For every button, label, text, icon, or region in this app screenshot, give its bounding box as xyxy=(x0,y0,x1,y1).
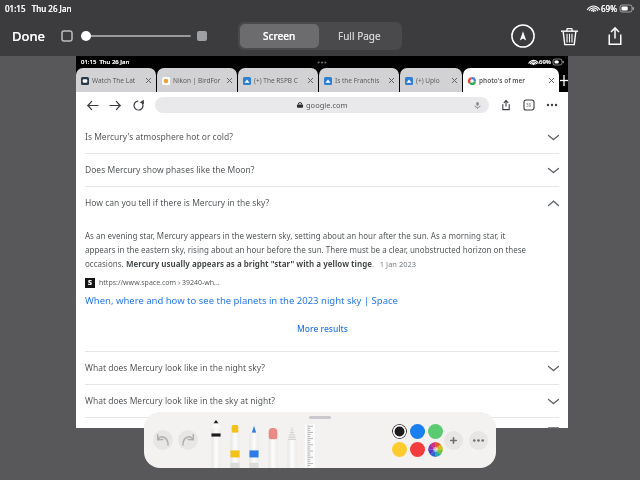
button[interactable]: Green xyxy=(428,424,443,439)
button[interactable]: (+) Uplo xyxy=(400,68,462,92)
staticText: 01:15 Thu 26 Jan xyxy=(5,3,72,14)
button[interactable]: Delete xyxy=(556,23,582,49)
button[interactable]: (+) The RSPB C xyxy=(238,68,318,92)
staticText: 01:15 Thu 26 Jan xyxy=(81,58,130,66)
button[interactable]: Highlighter xyxy=(248,424,260,468)
staticText: (+) Uplo xyxy=(416,76,450,85)
button[interactable]: Undo xyxy=(153,430,173,450)
staticText: Is Mercury's atmosphere hot or cold? xyxy=(85,131,548,143)
button[interactable]: Reload xyxy=(130,97,146,113)
button[interactable]: When, where and how to see the planets i… xyxy=(85,294,398,307)
button[interactable]: Full size xyxy=(197,31,207,41)
button[interactable]: Highlighter xyxy=(229,424,241,468)
staticText: photo's of mer xyxy=(479,76,547,85)
button[interactable]: Red xyxy=(410,442,425,457)
button[interactable]: Full Page xyxy=(319,24,400,48)
button[interactable]: What does Mercury look like in the night… xyxy=(85,352,559,384)
button[interactable]: Show tabs xyxy=(521,97,537,113)
button[interactable]: Redo xyxy=(178,430,198,450)
button[interactable]: Done xyxy=(10,23,48,49)
staticText: Is the Franchis xyxy=(335,76,387,85)
button[interactable]: Nikon | BirdFor xyxy=(157,68,237,92)
button[interactable]: More options xyxy=(469,431,488,450)
button[interactable]: Watch The Lat xyxy=(76,68,156,92)
staticText: 69% xyxy=(539,58,551,66)
staticText: 38 xyxy=(526,102,532,108)
staticText: As an evening star, Mercury appears in t… xyxy=(85,230,506,241)
staticText: What does Mercury look like in the night… xyxy=(85,362,548,374)
button[interactable]: Is the Franchis xyxy=(319,68,399,92)
button[interactable]: Lasso xyxy=(286,426,298,468)
button[interactable]: Zoom slider xyxy=(80,28,190,44)
staticText: Done xyxy=(12,27,46,45)
button[interactable]: Voice search xyxy=(472,100,482,110)
button[interactable]: photo's of mer xyxy=(463,68,559,92)
button[interactable]: Add xyxy=(444,431,463,450)
staticText: Mercury usually appears as a bright "sta… xyxy=(126,258,372,269)
button[interactable]: How can you tell if there is Mercury in … xyxy=(85,187,559,219)
button[interactable]: Markup xyxy=(510,23,536,49)
staticText: . 1 Jan 2023 xyxy=(372,259,417,269)
staticText: More results xyxy=(297,323,348,335)
button[interactable]: Back xyxy=(84,97,100,113)
staticText: Full Page xyxy=(338,29,381,43)
staticText: 69% xyxy=(601,3,617,14)
staticText: S xyxy=(88,278,92,288)
button[interactable]: What does Mercury look like in the sky a… xyxy=(85,385,559,417)
button[interactable]: Crop region xyxy=(62,31,72,41)
button[interactable]: Share xyxy=(602,23,628,49)
button[interactable]: Is Mercury visible to the human eye? xyxy=(85,418,559,428)
staticText: What does Mercury look like in the sky a… xyxy=(85,395,548,407)
button[interactable]: google.com xyxy=(155,97,489,113)
staticText: (+) The RSPB C xyxy=(254,76,306,85)
staticText: Does Mercury show phases like the Moon? xyxy=(85,164,548,176)
staticText: When, where and how to see the planets i… xyxy=(85,294,398,307)
button[interactable]: Yellow xyxy=(392,442,407,457)
staticText: google.com xyxy=(306,100,348,110)
button[interactable]: Does Mercury show phases like the Moon? xyxy=(85,154,559,186)
button[interactable]: New tab xyxy=(560,68,568,92)
button[interactable]: More results xyxy=(85,323,559,335)
staticText: Screen xyxy=(263,29,296,43)
button[interactable]: Pen xyxy=(210,420,222,468)
button[interactable]: Blue xyxy=(410,424,425,439)
staticText: Watch The Lat xyxy=(92,76,144,85)
staticText: How can you tell if there is Mercury in … xyxy=(85,197,548,209)
button[interactable]: Screen xyxy=(240,24,319,48)
staticText: appears in the eastern sky, rising about… xyxy=(85,244,527,255)
button[interactable]: Forward xyxy=(107,97,123,113)
button[interactable]: Share xyxy=(498,97,514,113)
button[interactable]: Colour picker xyxy=(428,442,443,457)
staticText: https://www.space.com › 39240-wh... xyxy=(99,278,220,288)
button[interactable]: Black, selected xyxy=(392,424,407,439)
button[interactable]: Ruler xyxy=(305,424,315,468)
button[interactable]: More xyxy=(544,97,560,113)
staticText: occasions. xyxy=(85,258,126,269)
button[interactable]: Is Mercury's atmosphere hot or cold? xyxy=(85,118,559,153)
staticText: Nikon | BirdFor xyxy=(173,76,225,85)
button[interactable]: Eraser xyxy=(267,428,279,468)
